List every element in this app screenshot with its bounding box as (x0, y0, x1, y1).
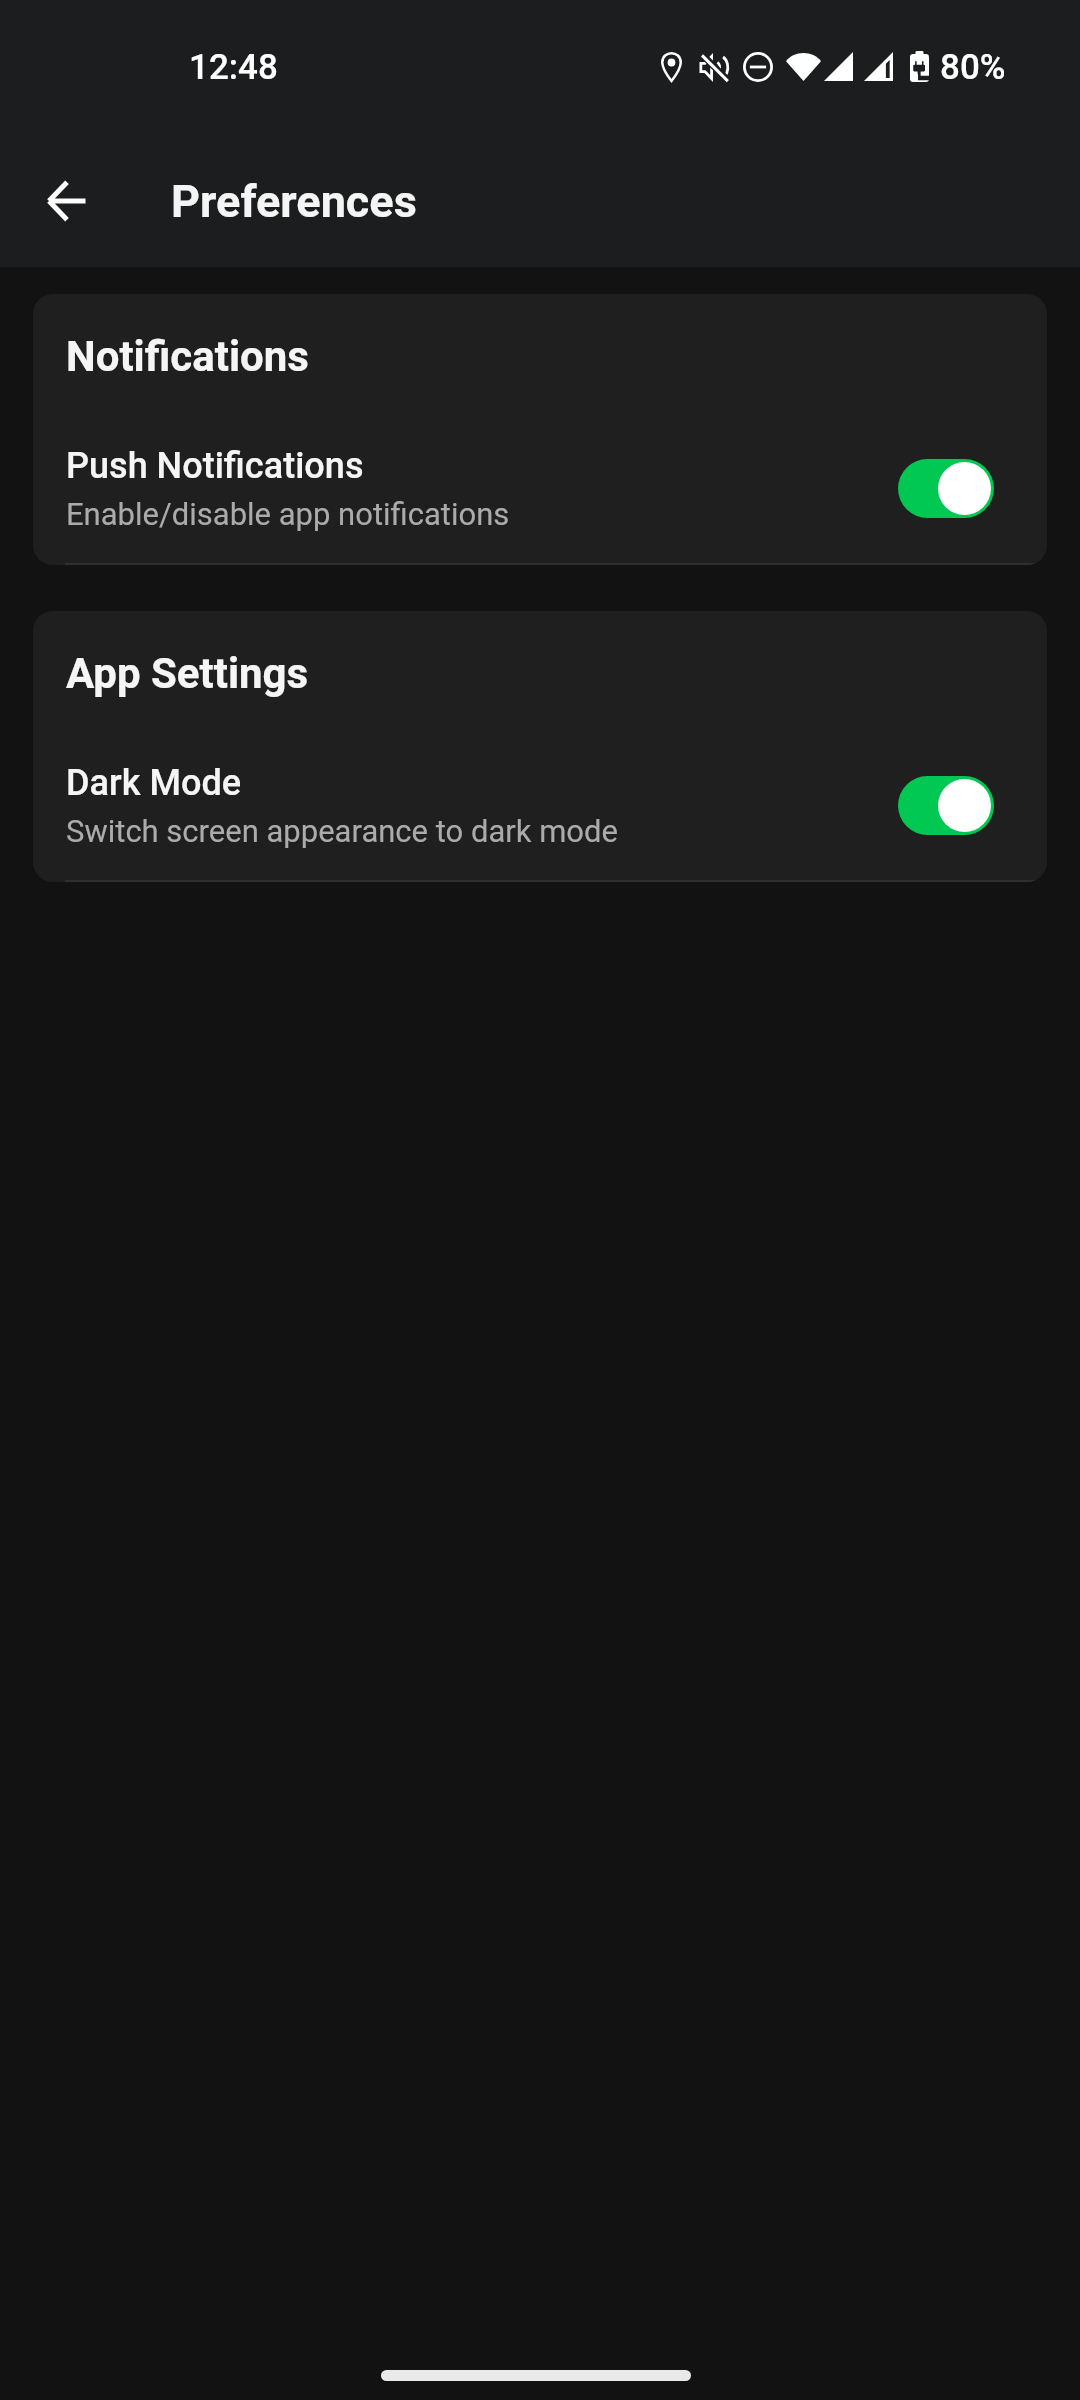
button[interactable]: Back (25, 159, 109, 243)
button[interactable]: Toggle setting (898, 459, 994, 518)
staticText: 12:48 (189, 47, 278, 88)
staticText: Dark Mode (66, 762, 242, 804)
button[interactable]: Push Notifications (33, 381, 1047, 563)
staticText: Switch screen appearance to dark mode (66, 813, 618, 849)
button[interactable]: Toggle setting (898, 776, 994, 835)
staticText: Enable/disable app notifications (66, 496, 510, 532)
button[interactable]: Dark Mode (33, 698, 1047, 880)
staticText: Notifications (66, 332, 309, 381)
staticText: 80% (940, 47, 1006, 88)
staticText: Preferences (171, 175, 417, 228)
staticText: App Settings (66, 649, 309, 698)
staticText: Push Notifications (66, 445, 364, 487)
